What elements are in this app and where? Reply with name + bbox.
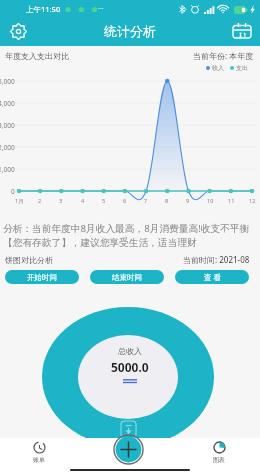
staticText: 支出 — [236, 64, 248, 72]
button[interactable]: 开始时间 — [5, 270, 79, 284]
staticText: 3,000 — [0, 121, 15, 130]
staticText: 上午11:50 — [26, 4, 61, 14]
button[interactable]: Settings — [7, 20, 29, 42]
staticText: 9 — [186, 197, 190, 204]
staticText: 【您有存款了】，建议您享受生活，适当理财 — [3, 237, 197, 249]
staticText: 账单 — [33, 456, 45, 464]
staticText: ··· — [98, 4, 104, 14]
staticText: 11 — [228, 197, 235, 204]
staticText: 2 — [38, 197, 42, 204]
staticText: 8 — [165, 197, 169, 204]
staticText: 1,000 — [0, 165, 15, 174]
staticText: 图表 — [213, 456, 225, 464]
button[interactable]: 账单 — [29, 441, 49, 464]
staticText: 1月 — [15, 197, 24, 205]
staticText: 总收入 — [118, 346, 142, 356]
button[interactable]: Calendar — [231, 20, 253, 42]
staticText: 0 — [11, 187, 15, 196]
staticText: 3 — [59, 197, 63, 204]
staticText: 年度支入支出对比 — [5, 51, 69, 61]
button[interactable]: 查 看 — [175, 270, 249, 284]
button[interactable]: Switch — [121, 378, 139, 384]
staticText: 收入 — [212, 64, 224, 72]
staticText: 分析：当前年度中8月收入最高，8月消费量高!收支不平衡 — [3, 222, 250, 235]
staticText: 当前年份: 本年度 — [193, 50, 254, 61]
staticText: 5000.0 — [111, 359, 149, 375]
button[interactable]: 结束时间 — [90, 270, 164, 284]
staticText: 10 — [207, 197, 214, 204]
staticText: 6 — [123, 197, 127, 204]
staticText: 5 — [102, 197, 106, 204]
staticText: 饼图对比分析 — [5, 255, 53, 265]
staticText: 4,000 — [0, 99, 15, 108]
button[interactable]: 图表 — [209, 441, 229, 464]
staticText: 结束时间 — [112, 273, 142, 282]
staticText: 当前时间: 2021-08 — [183, 254, 250, 265]
staticText: 统计分析 — [104, 23, 156, 39]
staticText: 查 看 — [204, 272, 221, 282]
button[interactable]: Export — [121, 421, 136, 438]
staticText: 4 — [81, 197, 85, 204]
staticText: 5,000 — [0, 77, 15, 86]
staticText: 7 — [144, 197, 148, 204]
button[interactable]: Add — [113, 434, 144, 465]
staticText: 12 — [249, 197, 256, 204]
staticText: 开始时间 — [27, 273, 57, 282]
staticText: 2,000 — [0, 143, 15, 152]
